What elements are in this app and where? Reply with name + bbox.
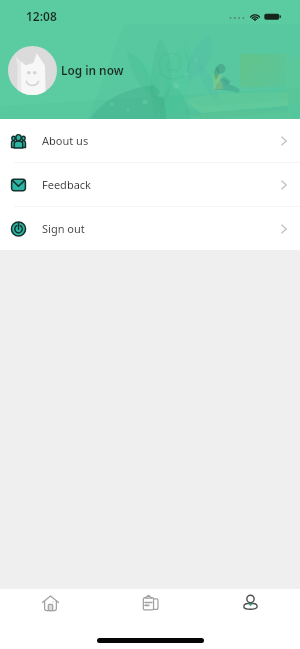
- staticText: Sign out: [42, 221, 85, 236]
- staticText: 12:08: [26, 8, 57, 24]
- button[interactable]: About us: [0, 119, 300, 162]
- button[interactable]: Log in now: [8, 46, 124, 95]
- staticText: Feedback: [42, 177, 91, 192]
- button[interactable]: Profile: [200, 589, 300, 616]
- button[interactable]: Sign out: [0, 207, 300, 250]
- button[interactable]: Home: [0, 589, 100, 616]
- staticText: Log in now: [61, 62, 124, 78]
- staticText: About us: [42, 133, 89, 148]
- button[interactable]: Orders: [100, 589, 200, 616]
- button[interactable]: Feedback: [0, 163, 300, 206]
